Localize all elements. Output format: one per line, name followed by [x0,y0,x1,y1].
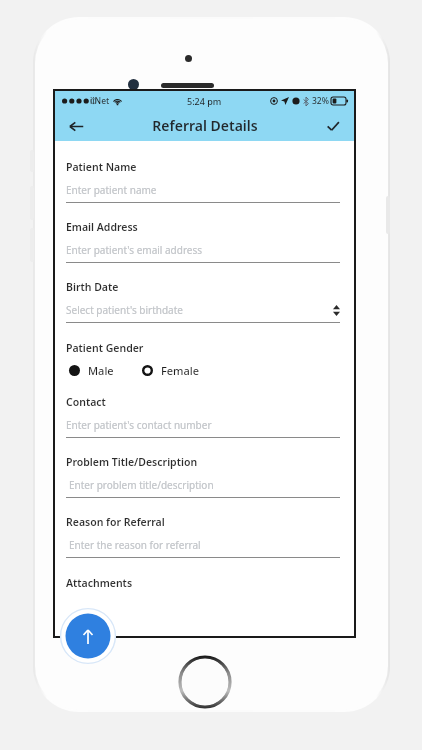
staticText: Contact [66,395,106,409]
staticText: Problem Title/Description [66,455,198,469]
button[interactable]: Female [142,363,200,378]
staticText: Enter the reason for referral [69,538,201,552]
staticText: Patient Gender [66,341,144,355]
staticText: Referral Details [152,116,258,135]
staticText: Reason for Referral [66,515,165,529]
button[interactable]: Save referral [318,111,348,141]
button[interactable]: Add attachment [60,608,116,664]
button[interactable]: Home [178,655,232,709]
staticText: Female [161,363,200,378]
staticText: 5:24 pm [187,95,222,107]
staticText: Enter patient's contact number [66,418,212,432]
staticText: Attachments [66,576,133,590]
button[interactable]: Patient Name [66,160,340,203]
staticText: iiNet [90,95,110,107]
staticText: Birth Date [66,280,119,294]
staticText: Enter patient's email address [66,243,203,257]
button[interactable]: Contact [66,395,340,438]
staticText: Enter problem title/description [69,478,214,492]
staticText: Male [88,363,114,378]
button[interactable]: Birth Date [66,280,340,323]
button[interactable]: Reason for Referral [66,515,340,558]
staticText: Email Address [66,220,138,234]
staticText: 32% [312,95,329,107]
button[interactable]: Back [61,111,91,141]
staticText: Patient Name [66,160,137,174]
staticText: Select patient's birthdate [66,303,183,317]
button[interactable]: Male [69,363,114,378]
button[interactable]: Problem Title/Description [66,455,340,498]
staticText: Enter patient name [66,183,157,197]
button[interactable]: Email Address [66,220,340,263]
